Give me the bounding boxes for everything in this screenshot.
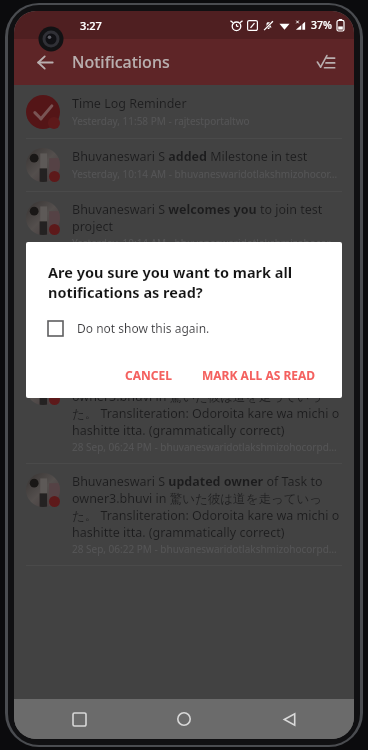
button[interactable]: Home xyxy=(167,702,201,736)
staticText: 37% xyxy=(311,18,332,32)
staticText: Time Log Reminder xyxy=(72,95,187,112)
staticText: Bhuvaneswari S added Milestone in test xyxy=(72,148,308,165)
staticText: Bhuvaneswari S updated owner of Task to … xyxy=(72,473,342,540)
staticText: MARK ALL AS READ xyxy=(202,367,316,383)
button[interactable]: CANCEL xyxy=(117,360,180,390)
button[interactable]: Bhuvaneswari S updated owner of Task to … xyxy=(14,362,354,463)
button[interactable]: Back xyxy=(272,702,306,736)
button[interactable]: Recents xyxy=(62,702,96,736)
staticText: Are you sure you want to mark all notifi… xyxy=(48,262,324,302)
button[interactable]: MARK ALL AS READ xyxy=(194,360,324,390)
button[interactable]: Time Log Reminder xyxy=(14,85,354,138)
staticText: Yesterday, 10:14 AM - bhuvaneswaridotlak… xyxy=(72,236,338,250)
button[interactable]: Bhuvaneswari S updated owner of Task to … xyxy=(14,464,354,565)
staticText: CANCEL xyxy=(125,367,172,383)
button[interactable]: Bhuvaneswari S welcomes you to join test… xyxy=(14,192,354,259)
staticText: 3:27 xyxy=(80,18,102,33)
staticText: Bhuvaneswari S updated owner of Task to … xyxy=(72,269,342,336)
staticText: Do not show this again. xyxy=(77,320,210,336)
staticText: 28 Sep, 06:24 PM - bhuvaneswaridotlakshm… xyxy=(72,440,337,454)
staticText: Notifications xyxy=(72,51,170,73)
button[interactable]: Bhuvaneswari S updated owner of Task to … xyxy=(14,260,354,361)
button[interactable]: Do not show this again. xyxy=(48,320,210,336)
staticText: Yesterday, 10:14 AM - bhuvaneswaridotlak… xyxy=(72,167,338,181)
button[interactable]: Back xyxy=(28,45,62,79)
staticText: Bhuvaneswari S updated owner of Task to … xyxy=(72,371,342,438)
staticText: 28 Sep, 06:22 PM - bhuvaneswaridotlakshm… xyxy=(72,542,337,556)
button[interactable] xyxy=(14,85,354,699)
button[interactable]: Mark all as read xyxy=(308,44,344,80)
staticText: Yesterday, 11:58 PM - rajtestportaltwo xyxy=(72,114,250,128)
staticText: Bhuvaneswari S welcomes you to join test… xyxy=(72,201,342,234)
button[interactable]: Bhuvaneswari S added Milestone in test xyxy=(14,139,354,191)
